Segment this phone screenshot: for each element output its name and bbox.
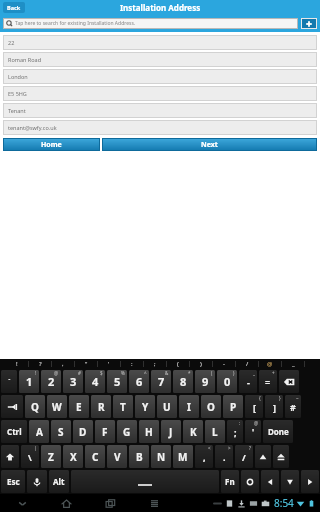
button[interactable]: K (183, 420, 203, 443)
button[interactable]: Q (25, 395, 45, 418)
button[interactable]: Space (71, 470, 219, 493)
button[interactable]: Tab (1, 395, 23, 418)
button[interactable]: Back (3, 2, 25, 13)
staticText: S (58, 425, 64, 439)
button[interactable]: Roman Road (3, 52, 317, 67)
button[interactable]: 22 (3, 35, 317, 50)
button[interactable]: N (151, 445, 171, 468)
button[interactable]: Right (301, 470, 319, 493)
button[interactable]: @ (245, 420, 261, 443)
button[interactable]: Home (3, 138, 100, 151)
button[interactable]: Z (41, 445, 61, 468)
button[interactable]: E (69, 395, 89, 418)
button[interactable]: W (47, 395, 67, 418)
button[interactable]: + (259, 370, 277, 393)
button[interactable]: tenant@swfy.co.uk (3, 120, 317, 135)
button[interactable]: " (75, 359, 97, 369)
button[interactable]: Shift right (273, 445, 289, 468)
button[interactable]: : (121, 359, 143, 369)
button[interactable]: _ (239, 370, 257, 393)
button[interactable]: ~ (285, 395, 301, 418)
staticText: I (187, 400, 191, 414)
button[interactable]: @ (41, 370, 61, 393)
button[interactable]: S (51, 420, 71, 443)
button[interactable]: Alt (49, 470, 69, 493)
button[interactable]: ! (6, 359, 28, 369)
button[interactable]: $ (85, 370, 105, 393)
button[interactable]: Esc (1, 470, 25, 493)
button[interactable]: Add (301, 18, 317, 29)
button[interactable]: ( (167, 359, 189, 369)
button[interactable]: M (173, 445, 193, 468)
button[interactable]: Tenant (3, 103, 317, 118)
button[interactable]: Home (44, 494, 88, 512)
button[interactable]: Y (135, 395, 155, 418)
button[interactable]: Done (263, 420, 293, 443)
staticText: 7 (158, 374, 165, 389)
button[interactable]: Menu (132, 494, 176, 512)
button[interactable]: Up (255, 445, 271, 468)
button[interactable]: Backspace (279, 370, 299, 393)
button[interactable]: ! (19, 370, 39, 393)
button[interactable]: ? (29, 359, 51, 369)
button[interactable]: | (21, 445, 39, 468)
button[interactable]: ' (98, 359, 120, 369)
button[interactable]: * (173, 370, 193, 393)
button[interactable]: B (129, 445, 149, 468)
button[interactable]: ? (235, 445, 253, 468)
button[interactable]: ` (1, 370, 17, 393)
staticText: D (79, 425, 87, 439)
button[interactable]: Hide keyboard (0, 494, 44, 512)
button[interactable]: C (85, 445, 105, 468)
button[interactable]: } (265, 395, 283, 418)
button[interactable]: H (139, 420, 159, 443)
button[interactable]: V (107, 445, 127, 468)
staticText: O (207, 400, 215, 414)
button[interactable]: A (29, 420, 49, 443)
button[interactable]: O (201, 395, 221, 418)
button[interactable]: _ (282, 359, 304, 369)
button[interactable]: @ (259, 359, 281, 369)
button[interactable]: ^ (129, 370, 149, 393)
button[interactable]: D (73, 420, 93, 443)
button[interactable]: L (205, 420, 225, 443)
button[interactable]: : (227, 420, 243, 443)
button[interactable]: R (91, 395, 111, 418)
staticText: Q (31, 400, 39, 414)
button[interactable]: J (161, 420, 181, 443)
button[interactable]: Down (281, 470, 299, 493)
button[interactable]: Ctrl (1, 420, 27, 443)
button[interactable]: ( (195, 370, 215, 393)
button[interactable]: Shift (1, 445, 19, 468)
button[interactable]: U (157, 395, 177, 418)
staticText: Home (41, 140, 62, 150)
button[interactable]: / (236, 359, 258, 369)
button[interactable]: T (113, 395, 133, 418)
button[interactable]: Fn (221, 470, 239, 493)
button[interactable]: I (179, 395, 199, 418)
button[interactable]: # (63, 370, 83, 393)
button[interactable]: % (107, 370, 127, 393)
button[interactable]: P (223, 395, 243, 418)
button[interactable]: E5 5HG (3, 86, 317, 101)
button[interactable]: Settings (241, 470, 259, 493)
button[interactable]: , (52, 359, 74, 369)
button[interactable]: X (63, 445, 83, 468)
button[interactable]: Left (261, 470, 279, 493)
button[interactable]: Voice input (27, 470, 47, 493)
button[interactable]: Next (102, 138, 317, 151)
button[interactable]: London (3, 69, 317, 84)
button[interactable]: { (245, 395, 263, 418)
button[interactable]: ) (217, 370, 237, 393)
button[interactable]: F (95, 420, 115, 443)
button[interactable]: ) (190, 359, 212, 369)
button[interactable]: Tap here to search for existing Installa… (3, 18, 298, 29)
staticText: , (62, 360, 64, 368)
button[interactable]: < (195, 445, 213, 468)
button[interactable]: > (215, 445, 233, 468)
button[interactable]: G (117, 420, 137, 443)
button[interactable]: ; (144, 359, 166, 369)
button[interactable]: Recent apps (88, 494, 132, 512)
button[interactable]: & (151, 370, 171, 393)
button[interactable]: - (213, 359, 235, 369)
